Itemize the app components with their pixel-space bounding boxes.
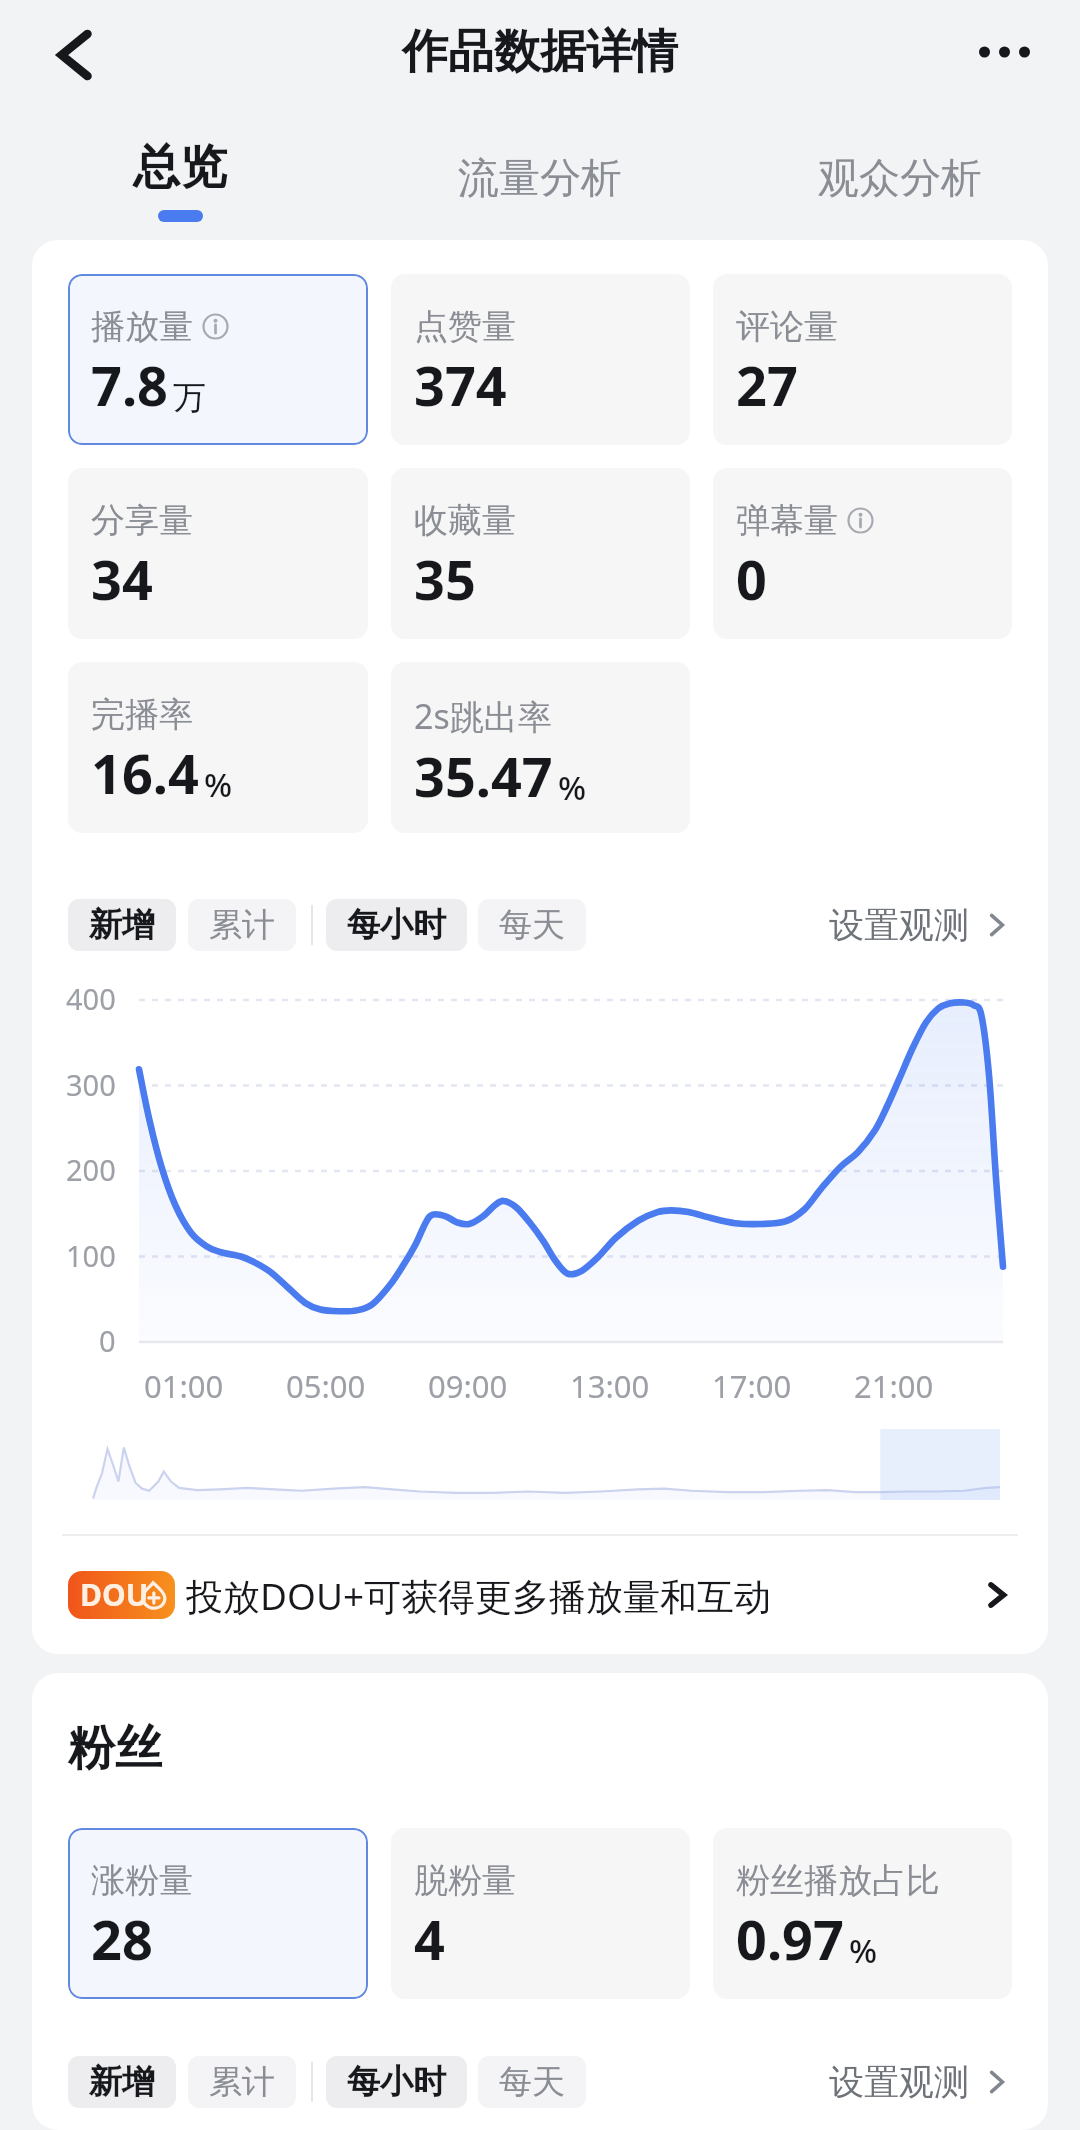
staticText: 弹幕量	[736, 499, 838, 542]
staticText: 4	[414, 1902, 445, 1976]
button[interactable]: 评论量	[713, 274, 1012, 445]
button[interactable]: 每天	[478, 899, 586, 951]
staticText: 粉丝播放占比	[736, 1859, 940, 1902]
button[interactable]: 每天	[478, 2056, 586, 2108]
staticText: 05:00	[286, 1365, 366, 1407]
staticText: 观众分析	[818, 153, 982, 205]
staticText: 16.4	[91, 736, 199, 810]
staticText: 200	[66, 1150, 116, 1189]
button[interactable]: 粉丝播放占比	[713, 1828, 1012, 1999]
button[interactable]: 分享量	[68, 468, 368, 639]
button[interactable]: 设置观测	[829, 2056, 1012, 2108]
button[interactable]: 总览	[0, 110, 360, 222]
staticText: 收藏量	[414, 499, 516, 542]
staticText: 累计	[209, 2061, 275, 2103]
staticText: 2s跳出率	[414, 693, 552, 739]
button[interactable]: More options	[964, 15, 1044, 95]
staticText: 粉丝	[68, 1719, 162, 1778]
button[interactable]: 每小时	[326, 2056, 467, 2108]
staticText: 设置观测	[829, 903, 969, 947]
staticText: 新增	[89, 2061, 155, 2103]
staticText: 每小时	[347, 2061, 446, 2103]
staticText: 374	[414, 348, 507, 422]
staticText: 28	[91, 1902, 153, 1976]
staticText: 投放DOU+可获得更多播放量和互动	[186, 1570, 772, 1621]
staticText: %	[204, 762, 233, 807]
button[interactable]: 脱粉量	[391, 1828, 690, 1999]
staticText: 34	[91, 542, 153, 616]
staticText: 09:00	[428, 1365, 508, 1407]
staticText: 0	[99, 1321, 116, 1360]
button[interactable]: 累计	[188, 899, 296, 951]
staticText: 7.8	[91, 348, 168, 422]
staticText: 13:00	[570, 1365, 650, 1407]
staticText: 万	[173, 377, 206, 419]
button[interactable]: 流量分析	[360, 110, 720, 222]
staticText: 27	[736, 348, 798, 422]
button[interactable]: 点赞量	[391, 274, 690, 445]
button[interactable]: 2s跳出率	[391, 662, 690, 833]
staticText: 新增	[89, 904, 155, 946]
button[interactable]: 弹幕量	[713, 468, 1012, 639]
button[interactable]: 观众分析	[720, 110, 1080, 222]
staticText: %	[849, 1928, 878, 1973]
staticText: 播放量	[91, 305, 193, 348]
button[interactable]: 每小时	[326, 899, 467, 951]
staticText: 每天	[499, 2061, 565, 2103]
button[interactable]: 新增	[68, 899, 176, 951]
button[interactable]: Back	[41, 20, 111, 90]
button[interactable]: 播放量	[68, 274, 368, 445]
staticText: 作品数据详情	[402, 23, 678, 81]
staticText: 300	[66, 1065, 116, 1104]
staticText: 分享量	[91, 499, 193, 542]
staticText: DOU	[80, 1574, 149, 1615]
button[interactable]: DOU	[32, 1536, 1048, 1654]
staticText: 总览	[133, 138, 227, 197]
button[interactable]: 累计	[188, 2056, 296, 2108]
staticText: %	[558, 765, 587, 810]
staticText: 流量分析	[458, 153, 622, 205]
staticText: 完播率	[91, 693, 193, 736]
staticText: 0	[736, 542, 767, 616]
staticText: 每小时	[347, 904, 446, 946]
staticText: 01:00	[144, 1365, 224, 1407]
button[interactable]: 完播率	[68, 662, 368, 833]
staticText: 每天	[499, 904, 565, 946]
staticText: 设置观测	[829, 2060, 969, 2104]
button[interactable]: 收藏量	[391, 468, 690, 639]
staticText: 17:00	[712, 1365, 792, 1407]
staticText: 累计	[209, 904, 275, 946]
button[interactable]: 设置观测	[829, 899, 1012, 951]
button[interactable]: 新增	[68, 2056, 176, 2108]
staticText: 35.47	[414, 739, 553, 813]
staticText: 35	[414, 542, 476, 616]
button[interactable]: 涨粉量	[68, 1828, 368, 1999]
staticText: 脱粉量	[414, 1859, 516, 1902]
staticText: 21:00	[854, 1365, 934, 1407]
staticText: 点赞量	[414, 305, 516, 348]
staticText: 涨粉量	[91, 1859, 193, 1902]
staticText: 400	[66, 979, 116, 1018]
staticText: 评论量	[736, 305, 838, 348]
staticText: 100	[66, 1236, 116, 1275]
staticText: 0.97	[736, 1902, 844, 1976]
